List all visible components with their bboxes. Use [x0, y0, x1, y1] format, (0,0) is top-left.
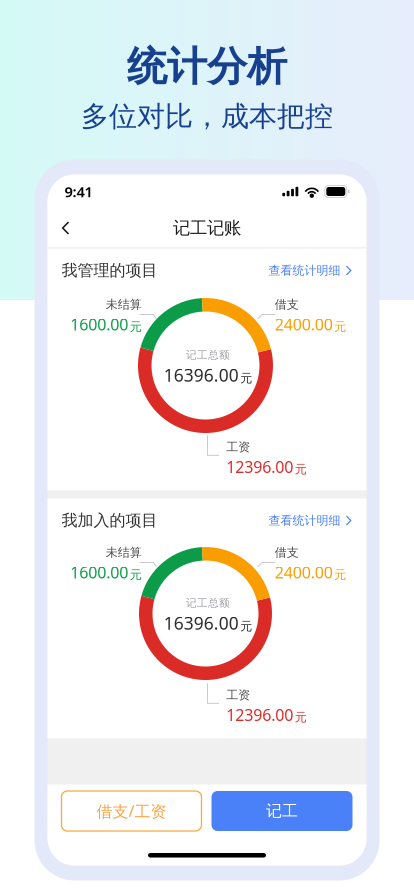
staticText: 记工 — [266, 801, 298, 821]
staticText: 统计分析 — [127, 42, 287, 91]
staticText: 12396.00 — [226, 456, 293, 477]
staticText: 1600.00 — [70, 314, 128, 335]
staticText: 元 — [240, 619, 252, 633]
staticText: 元 — [240, 371, 252, 385]
staticText: 多位对比，成本把控 — [81, 99, 333, 133]
button[interactable]: 我加入的项目 — [47, 498, 366, 542]
staticText: 元 — [295, 710, 307, 724]
staticText: 记工总额 — [186, 596, 230, 610]
staticText: 记工总额 — [186, 348, 230, 362]
staticText: 记工记账 — [173, 217, 241, 239]
button[interactable]: 记工 — [211, 791, 352, 831]
staticText: 12396.00 — [226, 704, 293, 725]
staticText: 查看统计明细 — [268, 513, 340, 528]
staticText: 我管理的项目 — [61, 261, 157, 280]
staticText: 借支/工资 — [96, 800, 166, 822]
staticText: 16396.00 — [164, 612, 239, 635]
staticText: 未结算 — [106, 297, 142, 312]
staticText: 借支 — [275, 545, 299, 560]
button[interactable]: 借支/工资 — [61, 791, 201, 831]
staticText: 我加入的项目 — [61, 511, 157, 530]
staticText: 工资 — [226, 687, 250, 702]
button[interactable]: Back — [47, 211, 84, 245]
staticText: 元 — [334, 567, 346, 582]
staticText: 元 — [130, 567, 142, 582]
staticText: 工资 — [226, 439, 250, 454]
staticText: 1600.00 — [70, 562, 128, 583]
button[interactable]: 我管理的项目 — [47, 248, 366, 292]
staticText: 借支 — [275, 297, 299, 312]
staticText: 元 — [130, 319, 142, 334]
staticText: 未结算 — [106, 545, 142, 560]
staticText: 2400.00 — [275, 562, 333, 583]
staticText: 元 — [334, 319, 346, 334]
staticText: 2400.00 — [275, 314, 333, 335]
staticText: 9:41 — [64, 182, 92, 201]
staticText: 16396.00 — [164, 364, 239, 387]
staticText: 元 — [295, 462, 307, 476]
staticText: 查看统计明细 — [268, 263, 340, 278]
